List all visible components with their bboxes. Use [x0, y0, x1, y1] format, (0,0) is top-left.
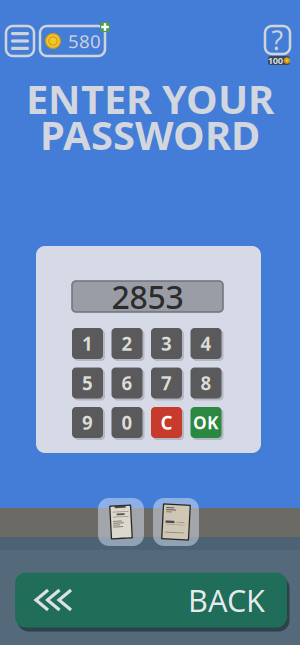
- button[interactable]: 8: [189, 366, 222, 399]
- staticText: 5: [82, 371, 93, 395]
- staticText: 4: [200, 331, 211, 356]
- button[interactable]: 2: [110, 327, 143, 360]
- staticText: 6: [121, 371, 132, 395]
- staticText: 1: [82, 331, 93, 356]
- button[interactable]: 1: [71, 327, 104, 360]
- button[interactable]: 4: [189, 327, 222, 360]
- button[interactable]: 6: [110, 366, 143, 399]
- staticText: BACK: [188, 580, 265, 620]
- button[interactable]: Buy coins: [100, 22, 110, 32]
- staticText: C: [160, 410, 172, 435]
- button[interactable]: 9: [71, 406, 104, 439]
- staticText: PASSWORD: [40, 108, 260, 161]
- button[interactable]: OK: [189, 406, 222, 439]
- staticText: ?: [271, 22, 283, 58]
- staticText: ENTER YOUR: [26, 72, 274, 125]
- staticText: 9: [82, 410, 93, 435]
- button[interactable]: 580 coins: [40, 26, 105, 56]
- button[interactable]: Menu: [6, 26, 34, 56]
- button[interactable]: 3: [150, 327, 183, 360]
- staticText: 3: [161, 331, 172, 356]
- staticText: OK: [193, 411, 219, 434]
- staticText: 2: [121, 331, 132, 356]
- staticText: 0: [121, 410, 132, 435]
- button[interactable]: C: [150, 406, 183, 439]
- button[interactable]: 5: [71, 366, 104, 399]
- staticText: 7: [161, 371, 172, 395]
- button[interactable]: 7: [150, 366, 183, 399]
- staticText: 8: [200, 371, 211, 395]
- staticText: 100: [268, 54, 283, 67]
- staticText: 580: [68, 29, 101, 53]
- staticText: 2853: [111, 275, 183, 318]
- button[interactable]: BACK: [13, 570, 289, 630]
- button[interactable]: 0: [110, 406, 143, 439]
- button[interactable]: Hint for 100 coins: [265, 26, 290, 54]
- button[interactable]: Receipt clue: [98, 498, 144, 546]
- button[interactable]: Note clue: [153, 498, 199, 546]
